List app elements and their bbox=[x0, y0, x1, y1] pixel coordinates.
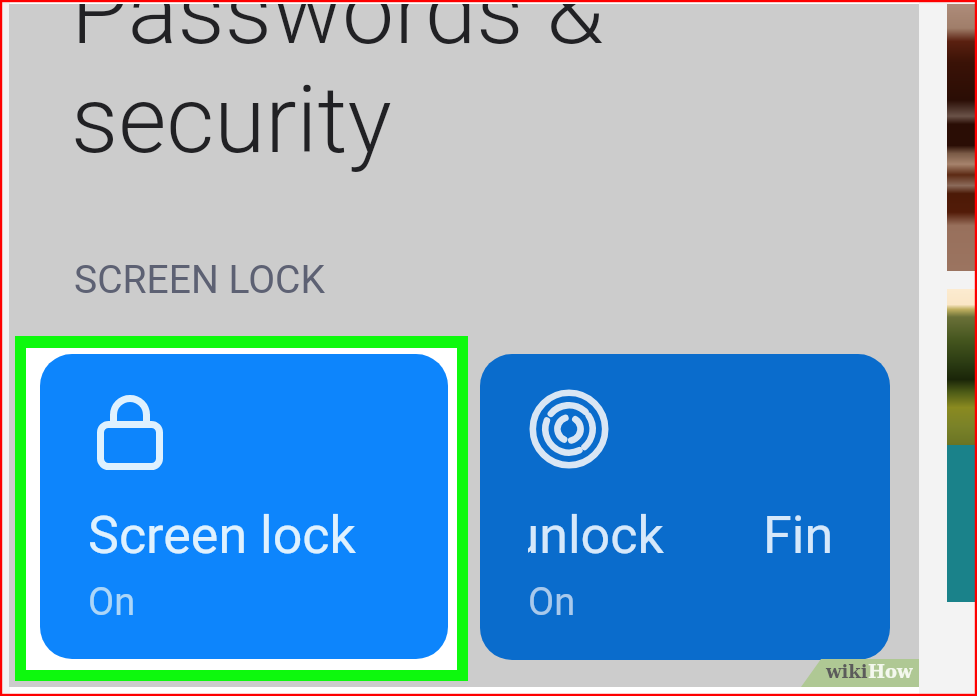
button[interactable]: Fingerprint unlock bbox=[480, 354, 890, 660]
staticText: Screen lock bbox=[88, 505, 356, 566]
staticText: How bbox=[868, 661, 913, 682]
button[interactable]: Screen lock bbox=[40, 354, 448, 659]
staticText: SCREEN LOCK bbox=[74, 257, 325, 303]
staticText: On bbox=[88, 580, 136, 625]
staticText: Passwords & security bbox=[71, 4, 604, 174]
staticText: On bbox=[528, 580, 576, 625]
staticText: Fingerprint unlock bbox=[528, 505, 554, 566]
staticText: wiki bbox=[826, 661, 868, 682]
other: Fingerprint unlock bbox=[530, 390, 608, 468]
staticText: Fingerprint unlock bbox=[763, 505, 834, 566]
other: Screen lock bbox=[97, 392, 165, 474]
